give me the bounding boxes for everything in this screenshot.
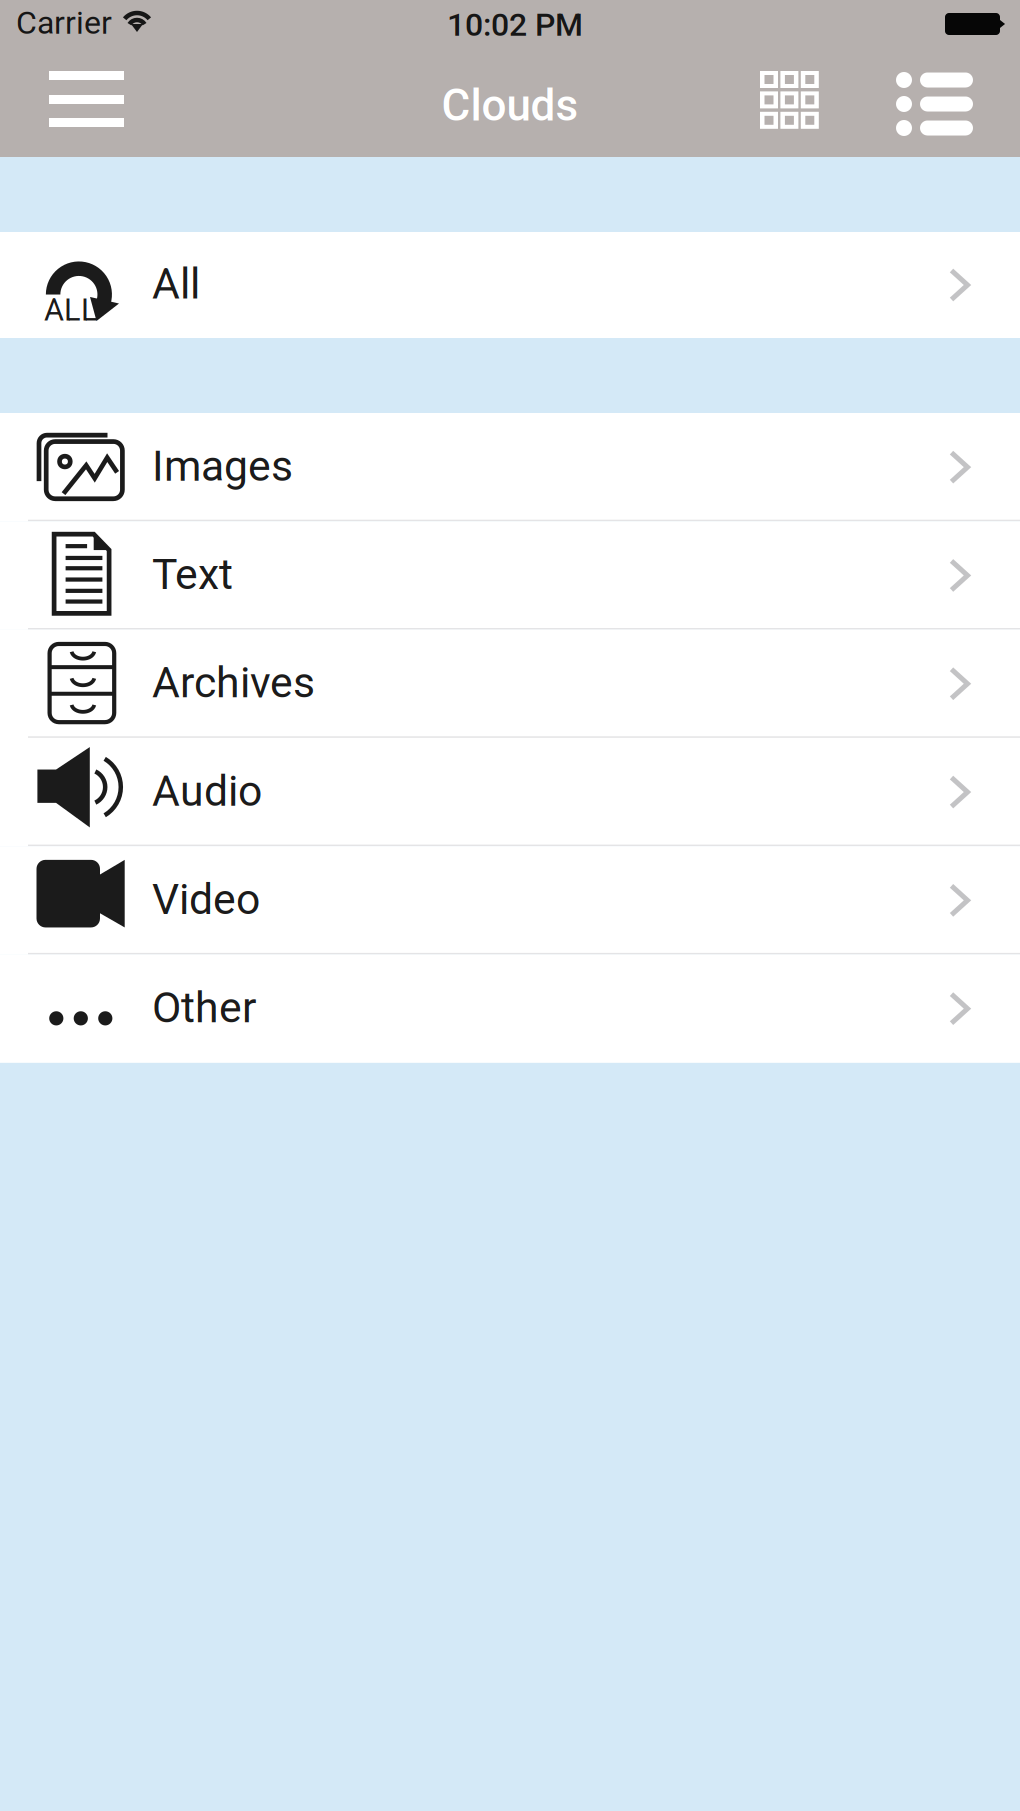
staticText: Video bbox=[152, 874, 260, 924]
button[interactable]: Grid view bbox=[760, 54, 820, 157]
button[interactable]: Images bbox=[0, 413, 1020, 521]
staticText: ALL bbox=[44, 292, 98, 328]
button[interactable]: Menu bbox=[49, 54, 125, 157]
staticText: Text bbox=[152, 549, 233, 599]
staticText: Clouds bbox=[441, 80, 578, 131]
button[interactable]: Audio bbox=[0, 738, 1020, 846]
button[interactable]: Other bbox=[0, 954, 1020, 1063]
staticText: Archives bbox=[152, 658, 315, 708]
button[interactable]: ALL bbox=[0, 233, 1020, 339]
staticText: All bbox=[152, 259, 200, 309]
staticText: Carrier bbox=[16, 4, 112, 41]
button[interactable]: Text bbox=[0, 521, 1020, 630]
staticText: 10:02 PM bbox=[447, 6, 583, 43]
staticText: Other bbox=[152, 983, 256, 1033]
button[interactable]: Archives bbox=[0, 630, 1020, 738]
staticText: Audio bbox=[152, 766, 262, 816]
staticText: Images bbox=[152, 441, 293, 491]
button[interactable]: Video bbox=[0, 846, 1020, 954]
button[interactable]: List view bbox=[896, 54, 974, 157]
